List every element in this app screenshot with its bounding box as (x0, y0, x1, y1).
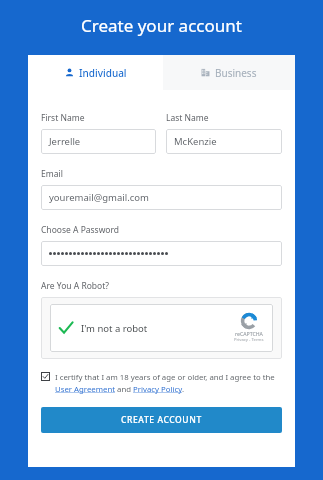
button[interactable]: Individual (28, 55, 163, 90)
staticText: CREATE ACCOUNT (121, 414, 202, 426)
staticText: Choose A Password (41, 224, 120, 236)
staticText: McKenzie (174, 135, 217, 148)
staticText: youremail@gmail.com (49, 191, 149, 204)
staticText: I certify that I am 18 years of age or o… (55, 372, 282, 394)
staticText: Are You A Robot? (41, 280, 109, 292)
button[interactable]: youremail@gmail.com (41, 185, 282, 210)
button[interactable]: CREATE ACCOUNT (41, 407, 282, 433)
button[interactable]: Business (163, 55, 295, 90)
staticText: reCAPTCHA (235, 330, 263, 337)
staticText: First Name (41, 112, 85, 124)
staticText: Last Name (166, 112, 209, 124)
button[interactable] (41, 241, 282, 266)
staticText: Business (215, 66, 257, 80)
staticText: Individual (79, 66, 127, 80)
button[interactable]: McKenzie (166, 129, 282, 154)
staticText: Privacy - Terms (234, 337, 264, 343)
staticText: I'm not a robot (81, 322, 148, 335)
staticText: Email (41, 168, 63, 180)
button[interactable]: I'm not a robot (50, 304, 273, 352)
staticText: Create your account (81, 14, 242, 37)
button[interactable]: I certify that I am 18 years of age or o… (41, 372, 282, 394)
button[interactable]: Jerrelle (41, 129, 156, 154)
staticText: Jerrelle (49, 135, 81, 148)
